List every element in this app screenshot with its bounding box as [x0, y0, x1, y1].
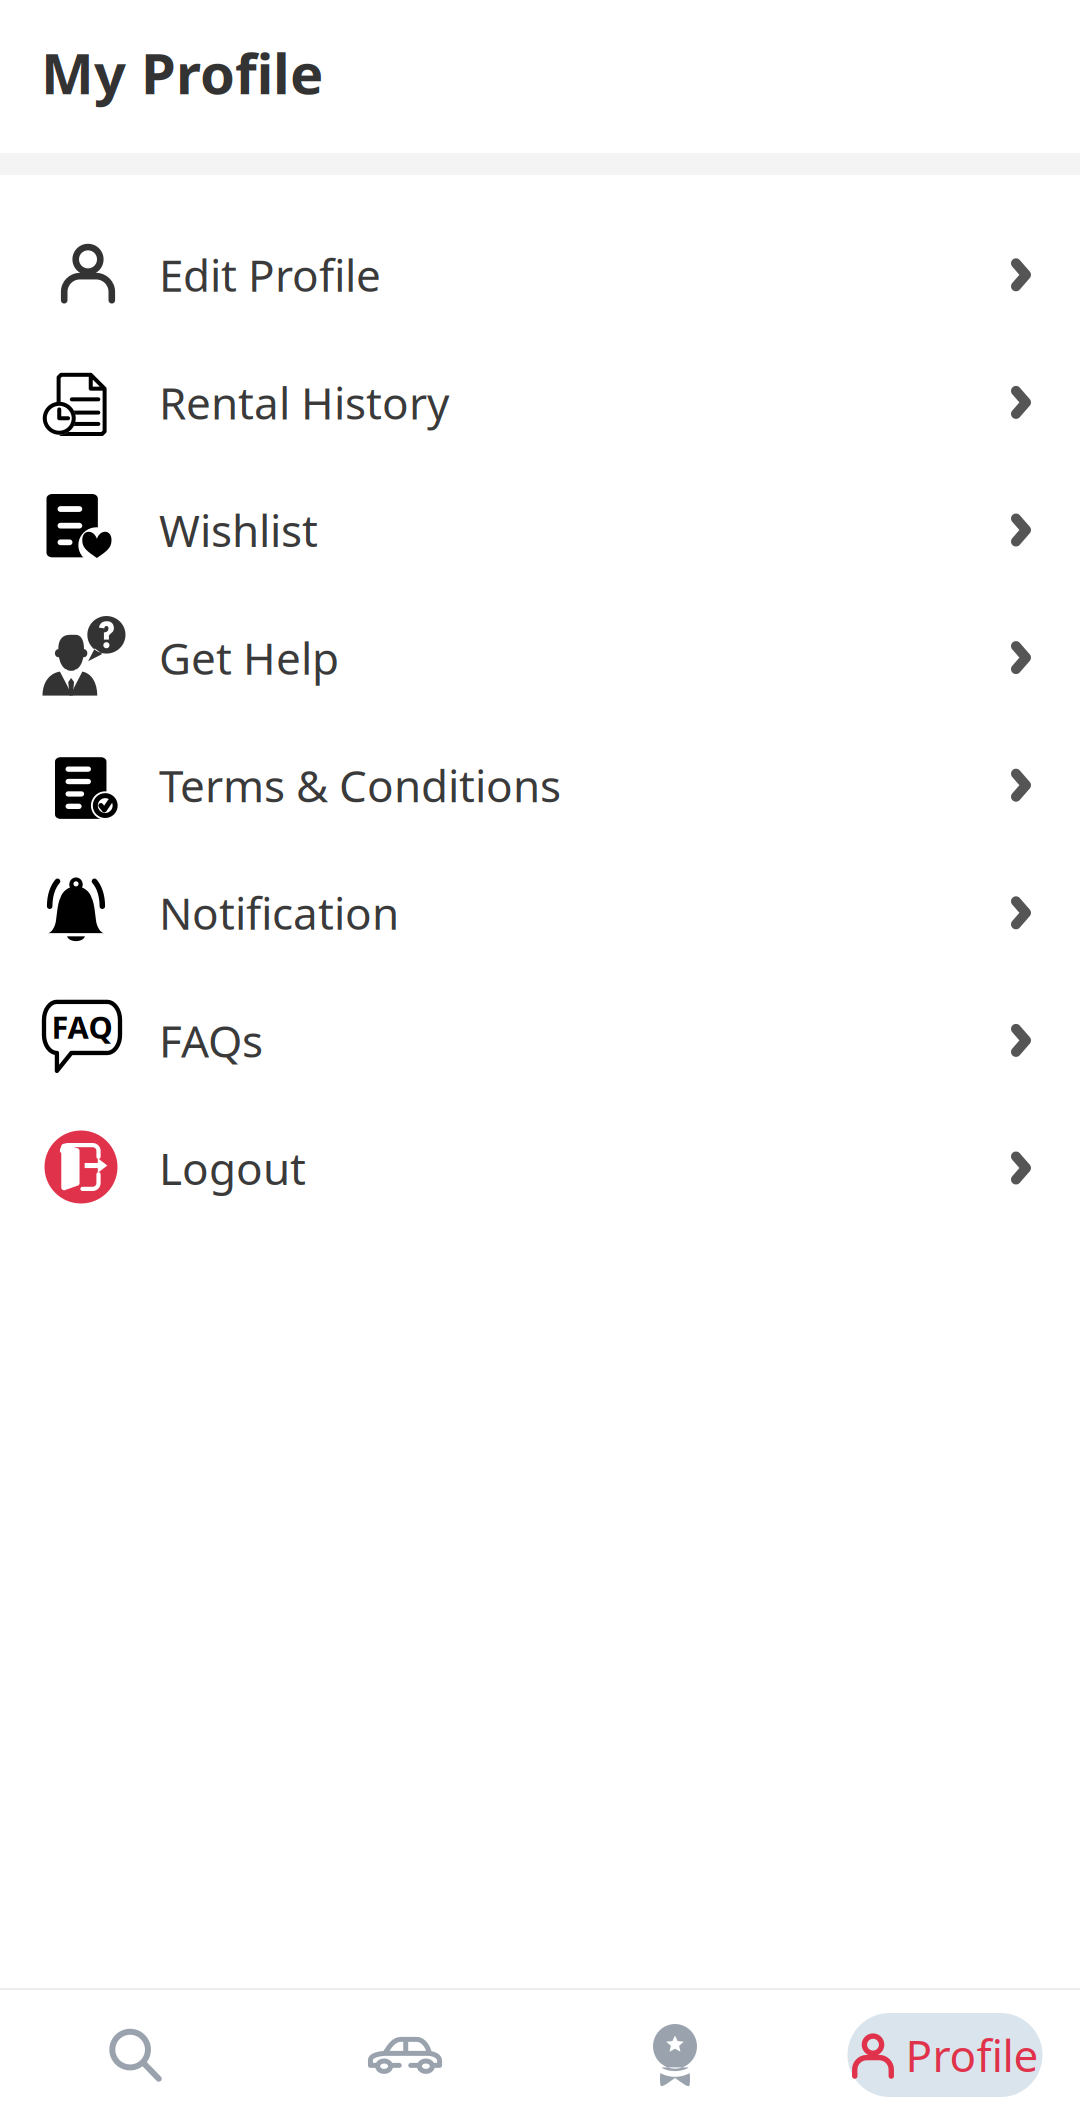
staticText: FAQs: [159, 1011, 263, 1070]
button[interactable]: FAQ: [0, 977, 1080, 1104]
button[interactable]: Rental History: [0, 339, 1080, 466]
staticText: Notification: [159, 884, 399, 942]
button[interactable]: Search: [0, 1990, 270, 2120]
button[interactable]: Wishlist: [0, 466, 1080, 594]
staticText: FAQ: [51, 1006, 112, 1047]
button[interactable]: Cars: [270, 1990, 540, 2120]
button[interactable]: Notification: [0, 849, 1080, 977]
button[interactable]: Rewards: [540, 1990, 810, 2120]
staticText: Edit Profile: [159, 246, 381, 304]
button[interactable]: Terms & Conditions: [0, 721, 1080, 849]
staticText: Logout: [159, 1139, 306, 1197]
button[interactable]: Logout: [0, 1104, 1080, 1232]
staticText: My Profile: [41, 35, 323, 110]
staticText: Profile: [905, 2026, 1038, 2084]
staticText: Wishlist: [159, 501, 318, 559]
staticText: Terms & Conditions: [159, 756, 561, 814]
button[interactable]: Profile: [810, 1990, 1080, 2120]
staticText: Rental History: [159, 373, 449, 432]
button[interactable]: Get Help: [0, 594, 1080, 721]
staticText: Get Help: [159, 628, 339, 687]
button[interactable]: Edit Profile: [0, 211, 1080, 339]
